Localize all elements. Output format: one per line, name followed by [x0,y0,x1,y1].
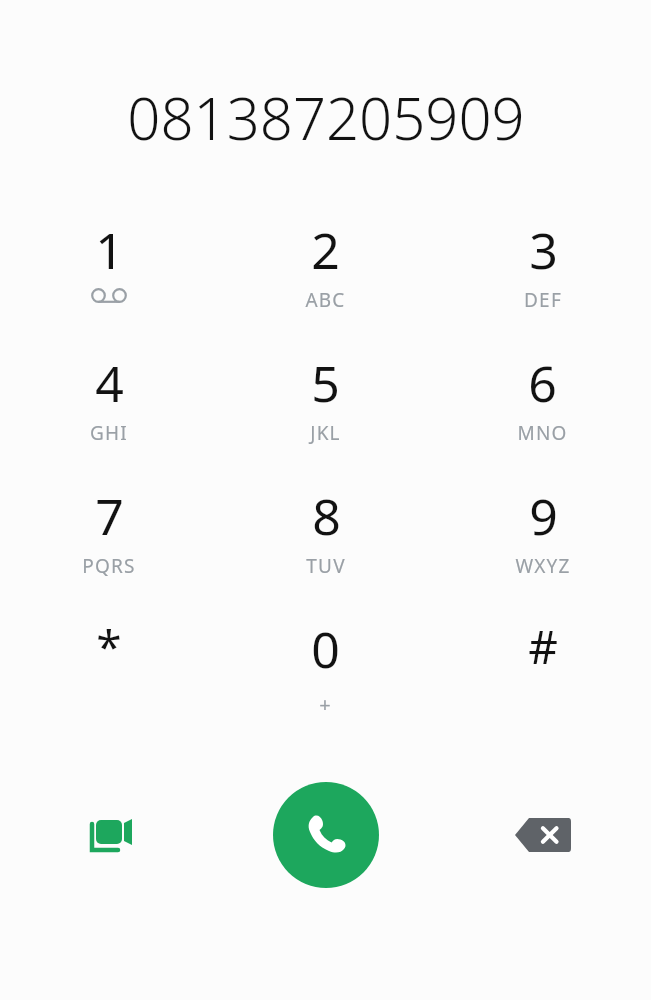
staticText: JKL [310,420,341,446]
staticText: 2 [311,216,340,284]
button[interactable]: 7 [0,476,217,609]
button[interactable]: 5 [217,343,434,476]
staticText: 3 [529,216,558,284]
button[interactable]: # [434,609,651,742]
button[interactable]: * [0,609,217,742]
button[interactable]: 0 [217,609,434,742]
button[interactable]: 6 [434,343,651,476]
staticText: 7 [95,482,124,550]
button[interactable]: 081387205909 [0,78,651,150]
staticText: 9 [529,482,558,550]
staticText: 1 [95,216,124,284]
staticText: # [528,615,558,678]
staticText: * [96,615,122,678]
staticText: GHI [90,420,128,446]
staticText: 0 [311,615,340,683]
staticText: TUV [306,553,346,579]
staticText: 081387205909 [127,78,525,150]
button[interactable]: 2 [217,210,434,343]
staticText: PQRS [82,553,136,579]
staticText: 4 [95,349,124,417]
staticText: 5 [311,349,340,417]
button[interactable]: 4 [0,343,217,476]
button[interactable]: 9 [434,476,651,609]
staticText: ABC [305,287,346,313]
button[interactable]: Call [273,782,379,888]
staticText: 6 [528,349,557,417]
button[interactable]: Backspace [434,770,651,900]
staticText: WXYZ [515,553,571,579]
button[interactable]: 3 [434,210,651,343]
button[interactable]: 1 [0,210,217,343]
staticText: 8 [312,482,341,550]
button[interactable]: 8 [217,476,434,609]
staticText: + [319,691,332,718]
staticText: MNO [517,420,568,446]
button[interactable]: Video call [0,770,217,900]
staticText: DEF [524,287,562,313]
